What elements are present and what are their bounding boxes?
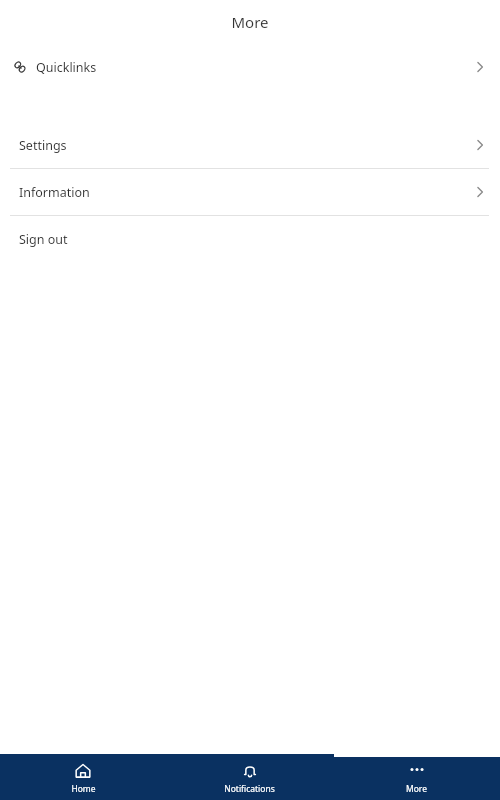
button[interactable]: Home: [0, 757, 166, 800]
staticText: More: [406, 783, 427, 795]
staticText: Notifications: [224, 783, 275, 795]
staticText: More: [231, 12, 269, 32]
button[interactable]: Settings: [0, 122, 500, 168]
button[interactable]: More: [333, 757, 500, 800]
button[interactable]: Information: [0, 169, 500, 215]
staticText: Information: [19, 184, 90, 201]
staticText: Quicklinks: [36, 59, 97, 76]
button[interactable]: Quicklinks: [0, 44, 500, 90]
staticText: Settings: [19, 137, 67, 154]
button[interactable]: Sign out: [0, 216, 500, 262]
staticText: Home: [71, 783, 96, 795]
button[interactable]: Notifications: [166, 757, 333, 800]
staticText: Sign out: [19, 231, 68, 248]
